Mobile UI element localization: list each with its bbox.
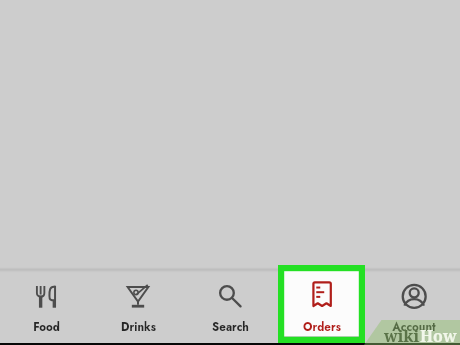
staticText: Search <box>212 319 249 336</box>
staticText: Account <box>392 319 436 336</box>
other: Drinks <box>124 281 152 309</box>
other: Search <box>216 281 244 309</box>
staticText: Food <box>33 319 60 336</box>
other: Orders <box>308 281 336 309</box>
button[interactable]: Account <box>368 270 460 345</box>
staticText: How <box>420 325 457 345</box>
button[interactable]: Orders <box>276 270 368 345</box>
staticText: Orders <box>303 319 341 336</box>
other: Food <box>32 281 60 309</box>
staticText: wiki <box>384 325 420 345</box>
button[interactable]: Search <box>184 270 276 345</box>
button[interactable]: Drinks <box>92 270 184 345</box>
staticText: Drinks <box>121 319 156 336</box>
button[interactable]: Food <box>0 270 92 345</box>
other: Account <box>400 281 428 309</box>
